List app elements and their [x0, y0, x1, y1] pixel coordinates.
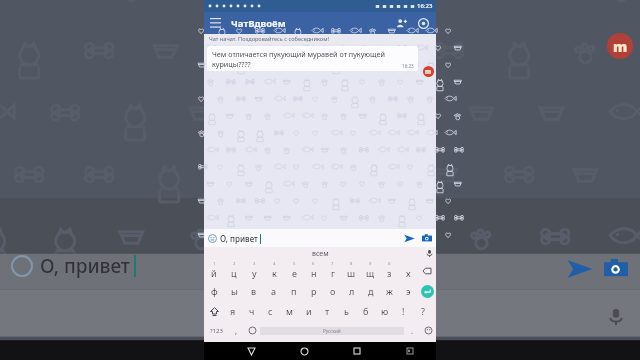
button[interactable]: 0: [380, 260, 399, 281]
button[interactable]: Backspace: [418, 260, 436, 281]
button[interactable]: а: [264, 281, 284, 301]
staticText: 4: [273, 261, 276, 267]
button[interactable]: ь: [337, 301, 356, 321]
button[interactable]: Send: [400, 229, 418, 247]
staticText: б: [363, 305, 369, 317]
button[interactable]: в: [244, 281, 264, 301]
button[interactable]: Enter: [418, 281, 436, 301]
staticText: ш: [347, 267, 356, 279]
staticText: курицы????: [212, 59, 251, 69]
button[interactable]: ?123: [204, 321, 228, 340]
button[interactable]: Settings: [412, 12, 434, 34]
button[interactable]: ?: [413, 301, 432, 321]
staticText: щ: [366, 267, 375, 279]
staticText: 16:23: [402, 63, 414, 69]
button[interactable]: п: [284, 281, 304, 301]
button[interactable]: 2: [224, 260, 244, 281]
staticText: й: [211, 267, 217, 279]
button[interactable]: !: [394, 301, 413, 321]
button[interactable]: О, привет: [220, 233, 400, 244]
button[interactable]: Русский: [260, 327, 404, 335]
staticText: в: [251, 285, 257, 297]
button[interactable]: м: [280, 301, 299, 321]
staticText: Чем отличается пукующий муравей от пукую…: [212, 49, 385, 59]
staticText: о: [330, 285, 336, 297]
button[interactable]: т: [318, 301, 337, 321]
staticText: .: [411, 325, 414, 336]
button[interactable]: 4: [264, 260, 284, 281]
staticText: ь: [344, 305, 349, 317]
button[interactable]: ю: [375, 301, 394, 321]
button[interactable]: л: [342, 281, 361, 301]
button[interactable]: б: [356, 301, 375, 321]
button[interactable]: 8: [342, 260, 361, 281]
button[interactable]: ,: [228, 321, 244, 340]
button[interactable]: о: [323, 281, 342, 301]
button[interactable]: Emoji keyboard: [420, 321, 436, 340]
staticText: с: [268, 305, 273, 317]
button[interactable]: Add person: [390, 12, 412, 34]
button[interactable]: Home: [296, 343, 312, 359]
staticText: 16:23: [417, 2, 433, 10]
staticText: з: [387, 267, 392, 279]
staticText: ф: [211, 285, 218, 297]
button[interactable]: д: [361, 281, 380, 301]
button[interactable]: Voice input: [423, 247, 436, 260]
staticText: х: [406, 267, 411, 279]
staticText: !: [402, 305, 405, 317]
button[interactable]: ч: [242, 301, 261, 321]
button[interactable]: ы: [224, 281, 244, 301]
button[interactable]: Language: [244, 321, 260, 340]
staticText: О, привет: [40, 253, 130, 279]
button[interactable]: х: [399, 260, 418, 281]
staticText: ч: [249, 305, 255, 317]
button[interactable]: Emoji: [204, 230, 220, 246]
staticText: Чат начат. Поздоровайтесь с собеседником…: [209, 35, 329, 43]
button[interactable]: Чем отличается пукующий муравей от пукую…: [207, 46, 418, 71]
button[interactable]: э: [399, 281, 418, 301]
staticText: а: [271, 285, 277, 297]
staticText: н: [311, 267, 317, 279]
staticText: m: [613, 37, 628, 56]
staticText: 5: [293, 261, 296, 267]
staticText: 7: [331, 261, 334, 267]
button[interactable]: 6: [304, 260, 323, 281]
staticText: р: [311, 285, 317, 297]
button[interactable]: ж: [380, 281, 399, 301]
staticText: ?: [421, 305, 425, 317]
button[interactable]: Menu: [204, 12, 226, 34]
button[interactable]: всем: [312, 249, 329, 259]
staticText: я: [230, 305, 236, 317]
button[interactable]: 5: [284, 260, 304, 281]
staticText: ы: [231, 285, 238, 297]
staticText: 3: [253, 261, 256, 267]
staticText: и: [306, 305, 312, 317]
button[interactable]: и: [299, 301, 318, 321]
button[interactable]: с: [261, 301, 280, 321]
staticText: О, привет: [220, 233, 258, 244]
button[interactable]: Camera: [418, 229, 436, 247]
staticText: к: [272, 267, 277, 279]
button[interactable]: 3: [244, 260, 264, 281]
staticText: 6: [312, 261, 315, 267]
button[interactable]: я: [224, 301, 242, 321]
button[interactable]: ф: [204, 281, 224, 301]
button[interactable]: 7: [323, 260, 342, 281]
button[interactable]: 9: [361, 260, 380, 281]
staticText: m: [425, 68, 432, 76]
button[interactable]: р: [304, 281, 323, 301]
button[interactable]: Screenshot: [402, 343, 418, 359]
button[interactable]: 1: [204, 260, 224, 281]
staticText: ,: [235, 325, 238, 336]
button[interactable]: .: [404, 321, 420, 340]
staticText: д: [368, 285, 374, 297]
staticText: 8: [350, 261, 353, 267]
staticText: 2: [233, 261, 236, 267]
button[interactable]: Shift: [204, 301, 224, 321]
staticText: ю: [381, 305, 389, 317]
button[interactable]: Recent apps: [349, 343, 365, 359]
button[interactable]: ЧатВдвоём: [231, 17, 286, 30]
button[interactable]: Back: [243, 343, 259, 359]
staticText: у: [252, 267, 257, 279]
staticText: ж: [386, 285, 393, 297]
